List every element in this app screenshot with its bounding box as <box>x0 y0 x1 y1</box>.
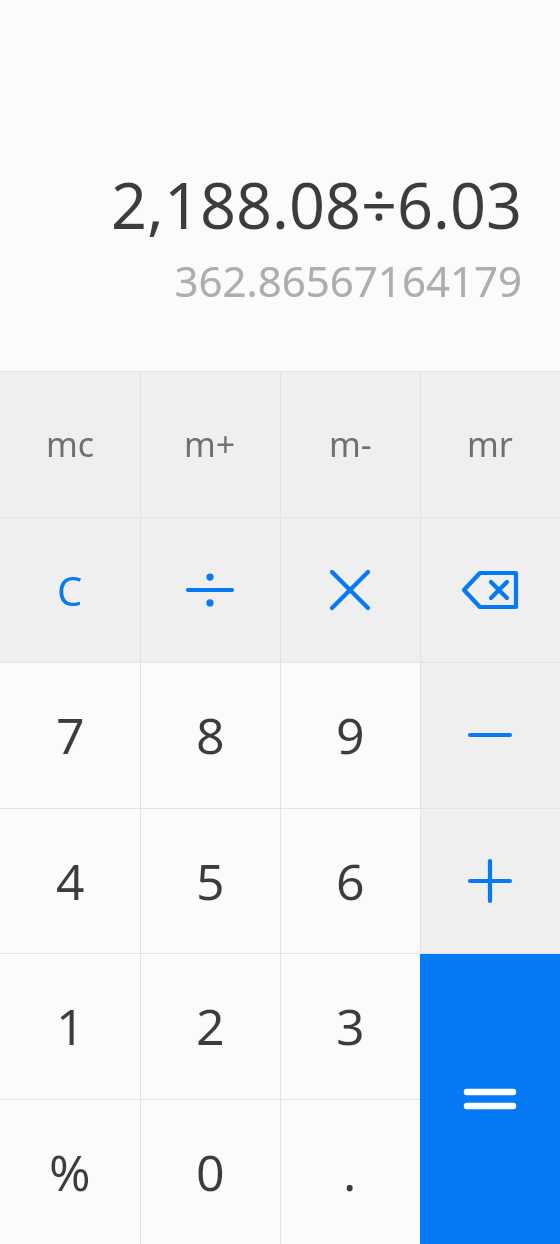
button[interactable]: % <box>0 1099 140 1244</box>
staticText: 7 <box>56 701 85 769</box>
button[interactable]: 7 <box>0 662 140 808</box>
button[interactable]: Backspace <box>420 517 560 663</box>
button[interactable]: 2 <box>140 953 280 1099</box>
staticText: 3 <box>336 992 365 1060</box>
staticText: 6 <box>336 847 365 915</box>
staticText: C <box>57 563 83 617</box>
button[interactable]: Multiply <box>280 517 420 663</box>
button[interactable]: 0 <box>140 1099 280 1244</box>
button[interactable]: mr <box>420 371 560 517</box>
button[interactable]: m- <box>280 371 420 517</box>
button[interactable]: Plus <box>420 808 560 954</box>
staticText: mr <box>467 421 513 467</box>
button[interactable]: 8 <box>140 662 280 808</box>
staticText: mc <box>46 421 95 467</box>
button[interactable]: Minus <box>420 662 560 808</box>
staticText: . <box>343 1138 357 1206</box>
staticText: 9 <box>336 701 365 769</box>
staticText: 8 <box>196 701 225 769</box>
staticText: 4 <box>56 847 85 915</box>
button[interactable]: 9 <box>280 662 420 808</box>
button[interactable]: 1 <box>0 953 140 1099</box>
staticText: m+ <box>184 421 236 467</box>
button[interactable]: m+ <box>140 371 280 517</box>
staticText: 0 <box>196 1138 225 1206</box>
button[interactable]: . <box>280 1099 420 1244</box>
button[interactable]: C <box>0 517 140 663</box>
button[interactable]: 6 <box>280 808 420 954</box>
button[interactable]: mc <box>0 371 140 517</box>
button[interactable]: Divide <box>140 517 280 663</box>
button[interactable]: 5 <box>140 808 280 954</box>
staticText: 1 <box>56 992 85 1060</box>
staticText: 5 <box>196 847 225 915</box>
staticText: 2 <box>196 992 225 1060</box>
button[interactable]: 4 <box>0 808 140 954</box>
staticText: 362.86567164179 <box>20 252 522 309</box>
button[interactable]: 3 <box>280 953 420 1099</box>
button[interactable]: Equals <box>420 953 560 1244</box>
staticText: 2,188.08÷6.03 <box>20 162 522 248</box>
staticText: m- <box>329 421 372 467</box>
staticText: % <box>49 1138 91 1206</box>
